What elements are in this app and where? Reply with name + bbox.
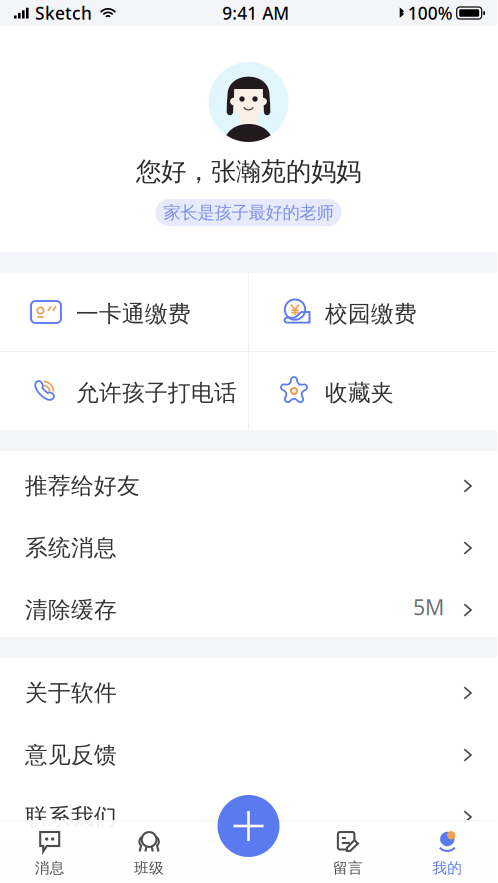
button[interactable]: 系统消息 — [0, 513, 497, 575]
button[interactable]: 清除缓存 — [0, 575, 497, 637]
button[interactable]: 推荐给好友 — [0, 451, 497, 513]
staticText: 留言 — [333, 859, 363, 877]
staticText: 意见反馈 — [25, 741, 117, 769]
staticText: Sketch — [35, 1, 92, 24]
staticText: 联系我们 — [25, 803, 117, 831]
staticText: 收藏夹 — [325, 379, 394, 407]
button[interactable]: 新建 — [217, 795, 279, 857]
staticText: 100% — [408, 1, 453, 24]
button[interactable]: 校园缴费 — [249, 273, 497, 351]
button[interactable]: 收藏夹 — [249, 352, 497, 430]
staticText: 我的 — [432, 859, 462, 877]
staticText: 家长是孩子最好的老师 — [163, 202, 333, 223]
button[interactable]: 联系我们 — [0, 782, 497, 844]
button[interactable]: 关于软件 — [0, 658, 497, 720]
staticText: 一卡通缴费 — [76, 300, 191, 328]
staticText: 系统消息 — [25, 534, 117, 562]
staticText: 5M — [413, 593, 444, 621]
staticText: 允许孩子打电话 — [76, 379, 237, 407]
staticText: 您好，张瀚苑的妈妈 — [136, 156, 361, 187]
staticText: 推荐给好友 — [25, 472, 140, 500]
staticText: 班级 — [134, 859, 164, 877]
staticText: 清除缓存 — [25, 596, 117, 624]
staticText: 关于软件 — [25, 679, 117, 707]
button[interactable]: 允许孩子打电话 — [0, 352, 248, 430]
button[interactable]: 留言 — [298, 820, 398, 883]
staticText: 校园缴费 — [325, 300, 417, 328]
staticText: 9:41 AM — [222, 1, 289, 24]
button[interactable]: 班级 — [99, 820, 199, 883]
button[interactable]: 消息 — [0, 820, 99, 883]
button[interactable]: 意见反馈 — [0, 720, 497, 782]
staticText: 消息 — [35, 859, 65, 877]
button[interactable]: 一卡通缴费 — [0, 273, 248, 351]
button[interactable]: 我的 — [398, 820, 497, 883]
